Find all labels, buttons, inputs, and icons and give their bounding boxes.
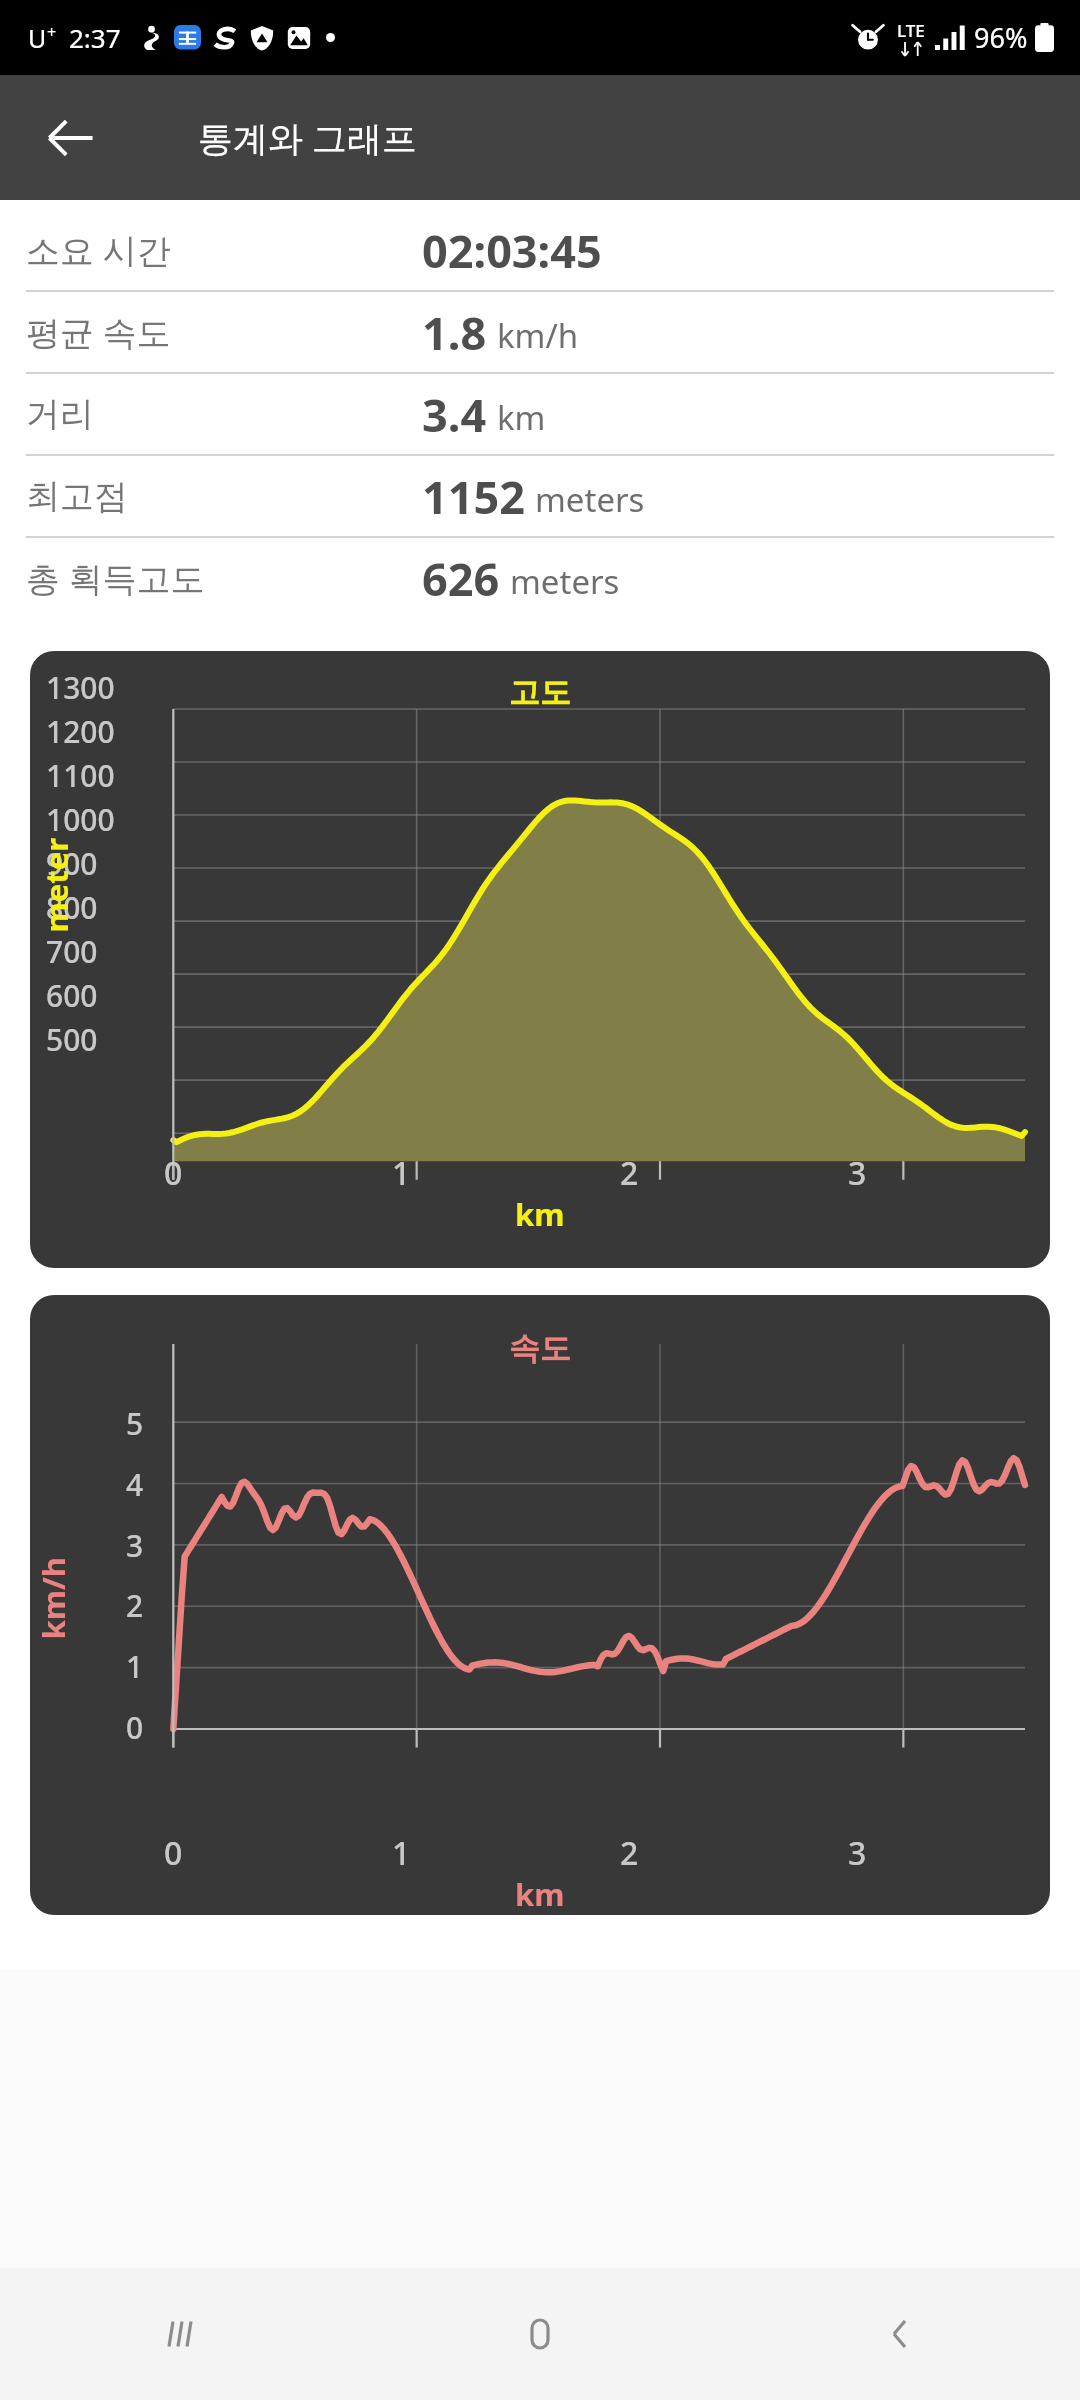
- staticText: +: [47, 21, 57, 43]
- button[interactable]: Back: [720, 2268, 1080, 2400]
- button[interactable]: 최고점: [0, 456, 1080, 536]
- staticText: 1200: [46, 711, 115, 752]
- staticText: meters: [535, 477, 645, 522]
- staticText: LTE: [897, 19, 925, 42]
- button[interactable]: 500: [30, 651, 1050, 1268]
- staticText: 3: [848, 1831, 867, 1875]
- staticText: 626: [422, 548, 500, 609]
- staticText: km: [515, 1873, 565, 1915]
- staticText: U: [28, 21, 47, 55]
- staticText: 1: [126, 1646, 144, 1687]
- staticText: 02:03:45: [422, 220, 602, 281]
- staticText: 3: [126, 1525, 144, 1566]
- staticText: 800: [46, 887, 98, 928]
- staticText: 4: [126, 1464, 144, 1505]
- staticText: 총 획득고도: [26, 555, 205, 601]
- staticText: 최고점: [26, 475, 128, 518]
- staticText: 1100: [46, 755, 115, 796]
- staticText: 속도: [509, 1329, 571, 1368]
- staticText: meters: [510, 559, 620, 604]
- staticText: 700: [46, 931, 98, 972]
- staticText: 2: [126, 1585, 144, 1626]
- button[interactable]: 거리: [0, 374, 1080, 454]
- staticText: km/h: [497, 313, 579, 358]
- button[interactable]: Recent apps: [0, 2268, 360, 2400]
- staticText: 통계와 그래프: [198, 114, 418, 162]
- button[interactable]: Back: [26, 93, 116, 183]
- staticText: 1: [392, 1151, 411, 1195]
- staticText: 96%: [974, 19, 1028, 56]
- staticText: 2: [620, 1151, 639, 1195]
- staticText: 1300: [46, 667, 115, 708]
- button[interactable]: 0: [30, 1295, 1050, 1915]
- staticText: 500: [46, 1019, 98, 1060]
- staticText: 900: [46, 843, 98, 884]
- staticText: 1152: [422, 466, 525, 527]
- staticText: 1.8: [422, 302, 487, 363]
- staticText: 3: [848, 1151, 867, 1195]
- staticText: 평균 속도: [26, 309, 171, 355]
- staticText: 고도: [509, 673, 571, 712]
- staticText: 소요 시간: [26, 227, 171, 273]
- staticText: 0: [164, 1151, 183, 1195]
- button[interactable]: Home: [360, 2268, 720, 2400]
- staticText: 2:37: [69, 20, 121, 55]
- button[interactable]: 평균 속도: [0, 292, 1080, 372]
- staticText: 5: [126, 1403, 144, 1444]
- staticText: meter: [34, 837, 76, 932]
- staticText: km: [497, 395, 546, 440]
- staticText: 2: [620, 1831, 639, 1875]
- staticText: 1: [392, 1831, 411, 1875]
- staticText: 3.4: [422, 384, 487, 445]
- staticText: 0: [126, 1707, 144, 1748]
- staticText: 600: [46, 975, 98, 1016]
- staticText: 거리: [26, 393, 94, 436]
- button[interactable]: 소요 시간: [0, 210, 1080, 290]
- staticText: 0: [164, 1831, 183, 1875]
- staticText: 1000: [46, 799, 115, 840]
- button[interactable]: 총 획득고도: [0, 538, 1080, 618]
- staticText: km/h: [31, 1556, 73, 1639]
- staticText: km: [515, 1193, 565, 1235]
